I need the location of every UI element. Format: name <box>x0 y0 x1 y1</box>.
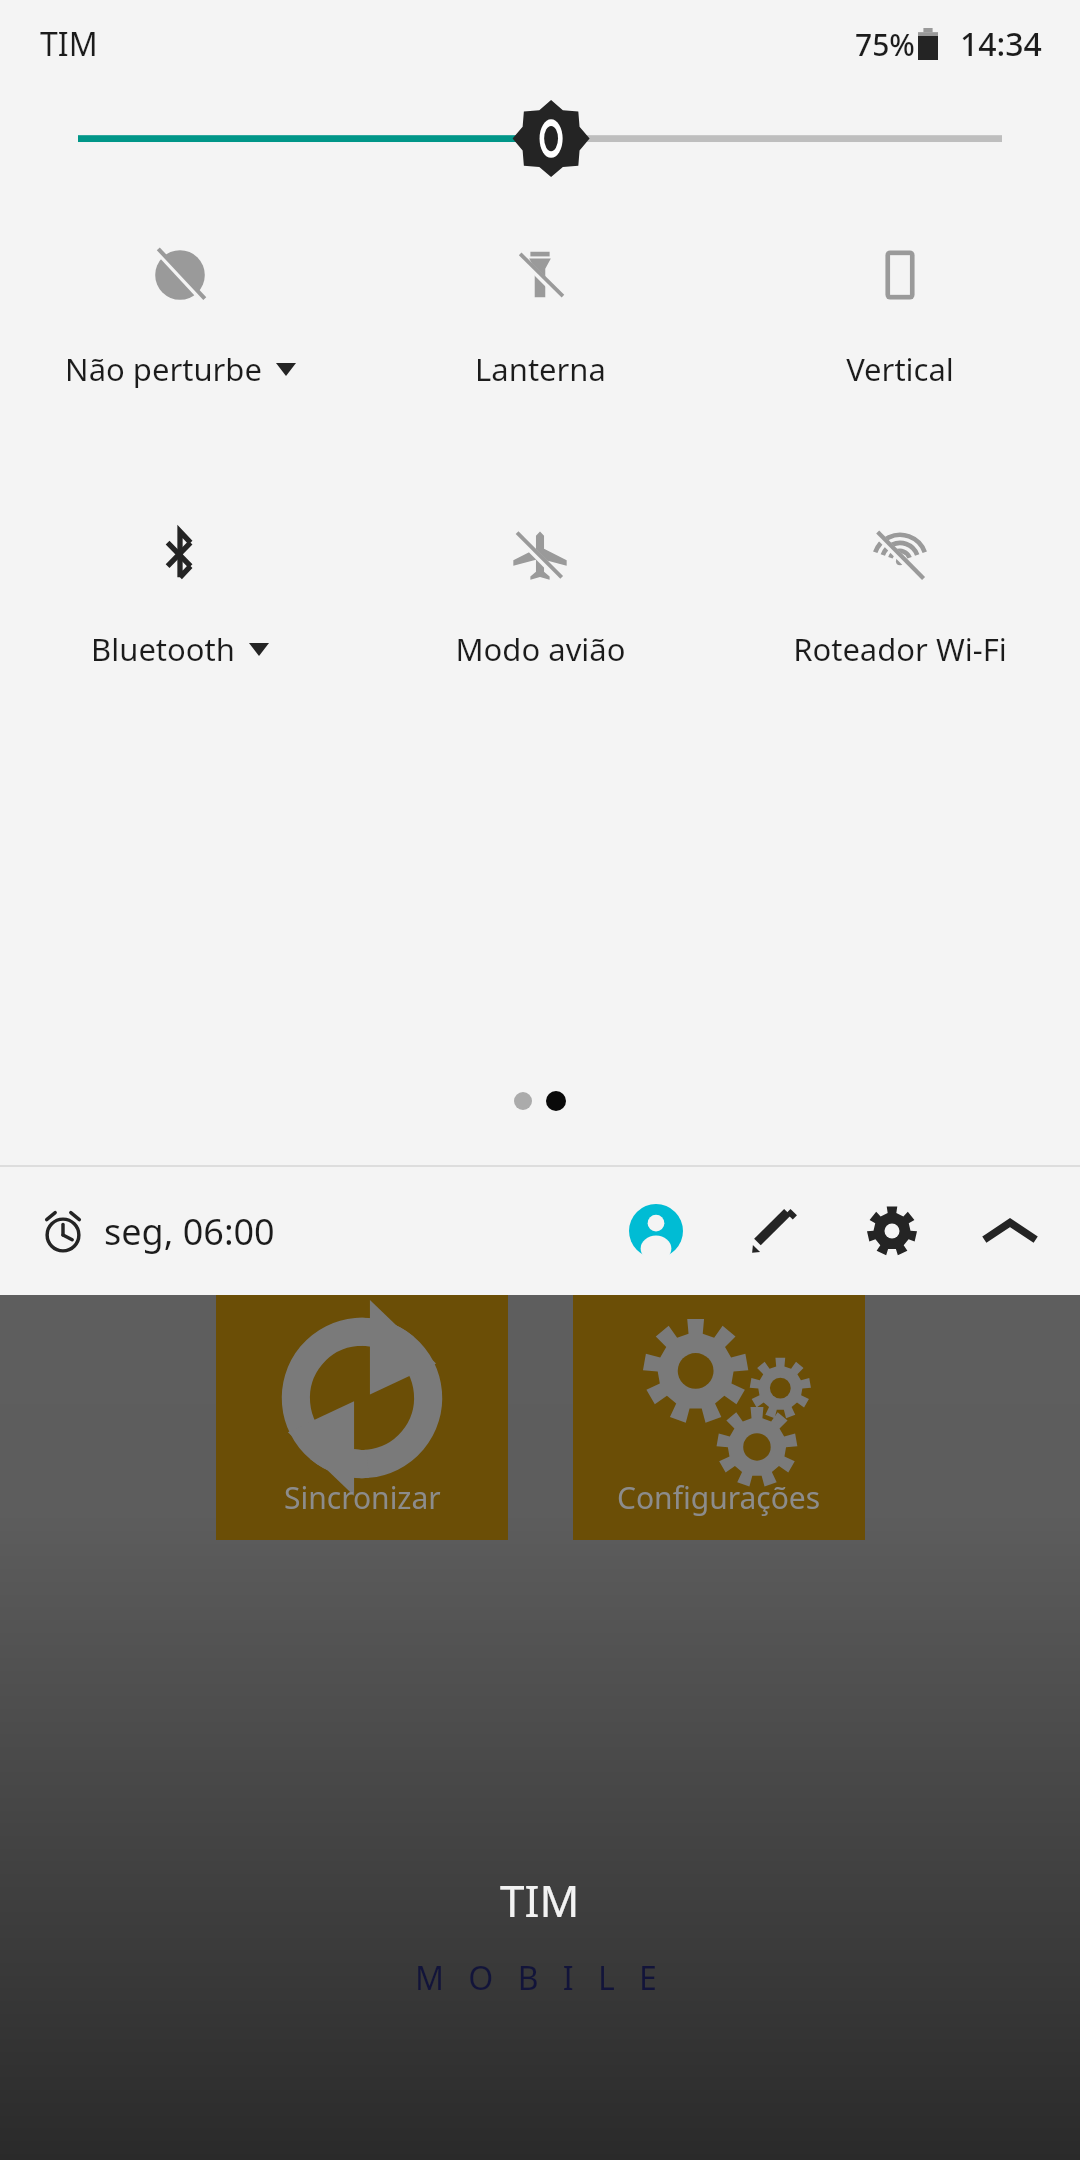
staticText: TIM <box>500 1870 580 1930</box>
staticText: TIM <box>40 22 98 66</box>
staticText: Vertical <box>846 348 954 390</box>
button[interactable]: User <box>620 1195 692 1267</box>
staticText: Sincronizar <box>284 1477 441 1518</box>
staticText: Configurações <box>617 1477 821 1518</box>
button[interactable]: Lanterna <box>360 238 720 396</box>
button[interactable]: Settings <box>856 1195 928 1267</box>
staticText: seg, 06:00 <box>104 1207 275 1256</box>
button[interactable]: Modo avião <box>360 518 720 676</box>
staticText: Lanterna <box>475 348 606 390</box>
button[interactable]: Edit <box>738 1195 810 1267</box>
staticText: 75% <box>855 24 915 65</box>
button[interactable]: seg, 06:00 <box>34 1199 281 1264</box>
button[interactable]: Bluetooth <box>0 518 360 676</box>
staticText: M O B I L E <box>415 1956 665 2000</box>
staticText: 14:34 <box>960 22 1042 66</box>
staticText: Não perturbe <box>65 348 262 390</box>
staticText: Bluetooth <box>91 628 235 670</box>
staticText: Modo avião <box>455 628 626 670</box>
button[interactable]: Sincronizar <box>216 1295 508 1540</box>
button[interactable]: Roteador Wi-Fi <box>720 518 1080 676</box>
button[interactable]: Collapse <box>974 1195 1046 1267</box>
staticText: Roteador Wi-Fi <box>793 628 1007 670</box>
button[interactable]: Não perturbe <box>0 238 360 396</box>
button[interactable]: Configurações <box>573 1295 865 1540</box>
button[interactable]: Vertical <box>720 238 1080 396</box>
button[interactable]: Brightness <box>0 88 1080 198</box>
